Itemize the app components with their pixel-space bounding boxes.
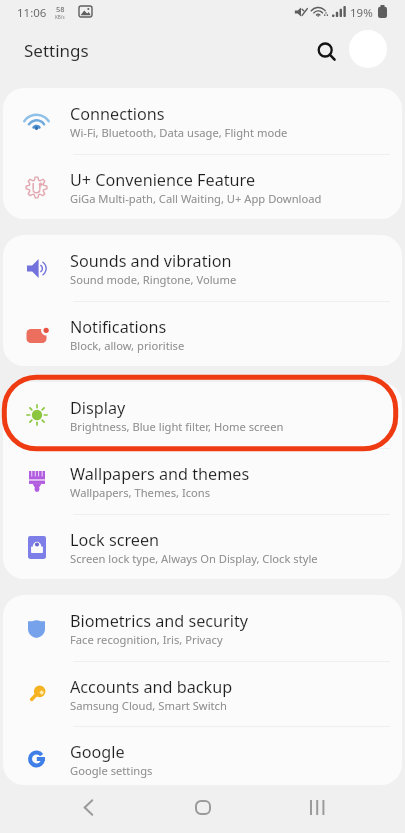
button[interactable]: Accounts and backup [3, 661, 402, 727]
button[interactable]: Sounds and vibration [3, 235, 402, 301]
staticText: Sounds and vibration [70, 250, 232, 272]
button[interactable]: Display [3, 382, 402, 448]
staticText: GiGa Multi-path, Call Waiting, U+ App Do… [70, 191, 322, 206]
button[interactable]: Lock screen [3, 514, 402, 580]
staticText: Screen lock type, Always On Display, Clo… [70, 551, 318, 566]
button[interactable]: Home [135, 783, 270, 831]
button[interactable]: U+ Convenience Feature [3, 154, 402, 220]
button[interactable]: Biometrics and security [3, 595, 402, 661]
staticText: 11:06 [17, 5, 47, 21]
button[interactable]: Notifications [3, 301, 402, 367]
button[interactable]: Recents [270, 783, 405, 831]
staticText: KB/s [55, 14, 65, 20]
staticText: Google settings [70, 763, 153, 778]
staticText: Google [70, 741, 125, 763]
button[interactable]: Back [0, 783, 135, 831]
staticText: Biometrics and security [70, 610, 249, 632]
staticText: Wallpapers and themes [70, 463, 250, 485]
staticText: U+ Convenience Feature [70, 169, 256, 191]
staticText: Display [70, 397, 126, 419]
button[interactable]: Account [349, 30, 387, 68]
button[interactable]: Google [3, 726, 402, 792]
staticText: Wi-Fi, Bluetooth, Data usage, Flight mod… [70, 125, 288, 140]
staticText: Face recognition, Iris, Privacy [70, 632, 223, 647]
staticText: Brightness, Blue light filter, Home scre… [70, 419, 284, 434]
staticText: Settings [24, 39, 89, 62]
staticText: 19% [350, 5, 373, 21]
staticText: Samsung Cloud, Smart Switch [70, 698, 227, 713]
staticText: Lock screen [70, 529, 160, 551]
staticText: Notifications [70, 316, 167, 338]
button[interactable]: Connections [3, 88, 402, 154]
staticText: Sound mode, Ringtone, Volume [70, 272, 237, 287]
staticText: 58 [56, 4, 65, 14]
button[interactable]: Wallpapers and themes [3, 448, 402, 514]
staticText: Accounts and backup [70, 676, 233, 698]
staticText: Block, allow, prioritise [70, 338, 185, 353]
staticText: Connections [70, 103, 165, 125]
staticText: Wallpapers, Themes, Icons [70, 485, 211, 500]
button[interactable]: Search [309, 34, 345, 70]
